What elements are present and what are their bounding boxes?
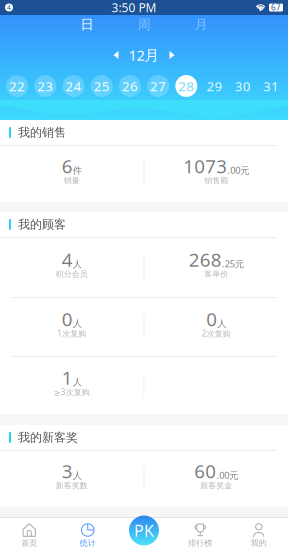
staticText: PK: [134, 520, 154, 541]
staticText: 67: [271, 2, 281, 13]
staticText: 客单价: [204, 269, 228, 279]
staticText: 首页: [21, 538, 37, 548]
button[interactable]: 28: [172, 74, 200, 98]
staticText: 28: [178, 77, 194, 95]
staticText: 24: [65, 77, 81, 95]
staticText: 件: [73, 165, 82, 176]
button[interactable]: 23: [31, 74, 59, 98]
staticText: 268: [189, 247, 222, 272]
staticText: 29: [206, 77, 222, 95]
staticText: 4: [7, 3, 11, 12]
staticText: 积分会员: [56, 269, 88, 279]
staticText: ≥3次复购: [54, 387, 90, 397]
staticText: 26: [122, 77, 138, 95]
staticText: 销量: [64, 176, 80, 185]
staticText: 我的顾客: [18, 217, 66, 232]
staticText: 新客奖金: [200, 481, 232, 490]
staticText: 人: [73, 470, 82, 481]
button[interactable]: 日: [58, 16, 115, 33]
staticText: 我的: [251, 538, 267, 548]
button[interactable]: 周: [115, 16, 172, 33]
staticText: 新客奖数: [56, 481, 88, 490]
button[interactable]: 统计: [58, 518, 117, 550]
staticText: 12月: [128, 45, 159, 65]
staticText: 我的销售: [18, 125, 66, 140]
staticText: 6: [62, 154, 73, 178]
button[interactable]: 我的: [229, 518, 288, 550]
staticText: 30: [235, 77, 251, 95]
staticText: 3:50 PM: [111, 0, 156, 15]
button[interactable]: 月: [172, 16, 229, 33]
button[interactable]: 24: [59, 74, 88, 98]
button[interactable]: 31: [257, 74, 285, 98]
button[interactable]: 上一月: [104, 46, 128, 64]
staticText: 60: [194, 459, 216, 483]
button[interactable]: 25: [88, 74, 116, 98]
button[interactable]: 下一月: [160, 46, 184, 64]
button[interactable]: 29: [200, 74, 229, 98]
staticText: .00元: [227, 164, 249, 176]
staticText: 23: [37, 77, 53, 95]
staticText: 0: [62, 307, 73, 331]
staticText: 月: [194, 16, 207, 33]
staticText: 2次复购: [202, 328, 231, 339]
button[interactable]: 26: [116, 74, 144, 98]
staticText: 日: [80, 16, 93, 33]
staticText: 统计: [80, 538, 96, 548]
button[interactable]: PK: [117, 514, 171, 547]
button[interactable]: 22: [3, 74, 31, 98]
staticText: 周: [137, 16, 150, 33]
staticText: 1073: [183, 154, 227, 178]
staticText: 31: [263, 77, 279, 95]
button[interactable]: 30: [229, 74, 257, 98]
staticText: 我的新客奖: [18, 430, 78, 445]
staticText: 销售额: [204, 176, 228, 185]
staticText: 人: [217, 318, 226, 329]
staticText: 27: [150, 77, 166, 95]
staticText: 人: [73, 318, 82, 329]
staticText: 22: [9, 77, 25, 95]
staticText: 1: [62, 365, 73, 390]
staticText: 人: [73, 376, 82, 388]
staticText: 3: [62, 459, 73, 483]
staticText: 25: [94, 77, 110, 95]
staticText: 0: [206, 307, 217, 331]
staticText: .25元: [222, 257, 244, 270]
button[interactable]: 排行榜: [171, 518, 229, 550]
button[interactable]: 首页: [0, 518, 58, 550]
button[interactable]: 27: [144, 74, 172, 98]
staticText: 4: [62, 247, 73, 272]
staticText: 人: [73, 258, 82, 270]
staticText: .00元: [216, 469, 238, 481]
staticText: 排行榜: [188, 538, 212, 548]
staticText: 1次复购: [57, 328, 86, 339]
